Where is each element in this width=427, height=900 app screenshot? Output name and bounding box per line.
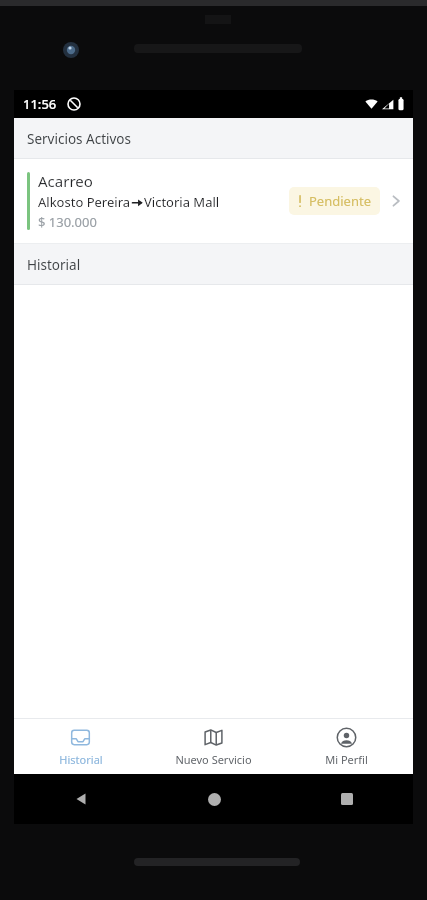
- staticText: Victoria Mall: [144, 193, 220, 211]
- button[interactable]: Nuevo Servicio: [147, 719, 280, 774]
- staticText: Historial: [59, 752, 103, 767]
- button[interactable]: Acarreo: [14, 159, 413, 243]
- staticText: Pendiente: [309, 192, 371, 210]
- button[interactable]: Back: [64, 782, 98, 816]
- staticText: Acarreo: [38, 171, 93, 191]
- staticText: Mi Perfil: [325, 752, 368, 767]
- button[interactable]: Mi Perfil: [280, 719, 413, 774]
- staticText: $ 130.000: [38, 213, 97, 231]
- staticText: Servicios Activos: [27, 130, 132, 148]
- staticText: 11:56: [23, 95, 57, 113]
- button[interactable]: Home: [197, 782, 231, 816]
- staticText: Historial: [27, 256, 81, 274]
- button[interactable]: Recents: [330, 782, 364, 816]
- staticText: Nuevo Servicio: [175, 752, 252, 767]
- button[interactable]: Historial: [14, 719, 147, 774]
- staticText: Alkosto Pereira: [38, 193, 131, 211]
